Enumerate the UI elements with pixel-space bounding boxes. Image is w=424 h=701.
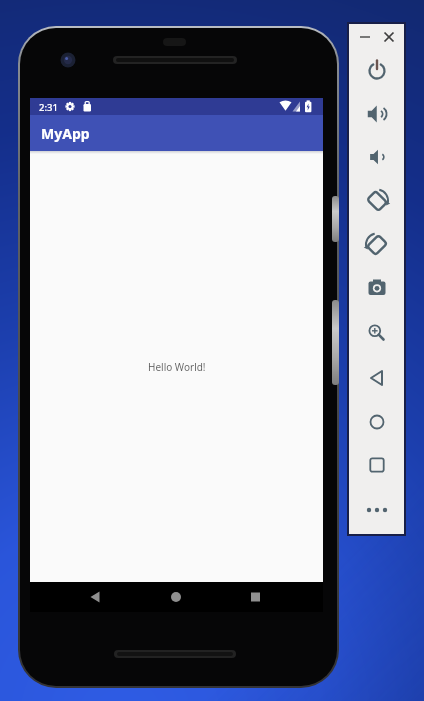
button[interactable]: [359, 227, 395, 263]
button[interactable]: [379, 27, 399, 47]
button[interactable]: [359, 96, 395, 132]
button[interactable]: [161, 582, 191, 612]
staticText: 2:31: [39, 101, 58, 114]
staticText: Hello World!: [148, 360, 206, 374]
button[interactable]: [240, 582, 270, 612]
button[interactable]: [359, 447, 395, 483]
button[interactable]: [359, 492, 395, 528]
button[interactable]: [359, 404, 395, 440]
button[interactable]: [359, 360, 395, 396]
button[interactable]: [359, 52, 395, 88]
button[interactable]: [80, 582, 110, 612]
button[interactable]: [359, 270, 395, 306]
button[interactable]: [359, 183, 395, 219]
button[interactable]: [359, 139, 395, 175]
staticText: MyApp: [41, 124, 90, 143]
button[interactable]: MyApp: [30, 115, 323, 151]
button[interactable]: [355, 27, 375, 47]
button[interactable]: [359, 315, 395, 351]
